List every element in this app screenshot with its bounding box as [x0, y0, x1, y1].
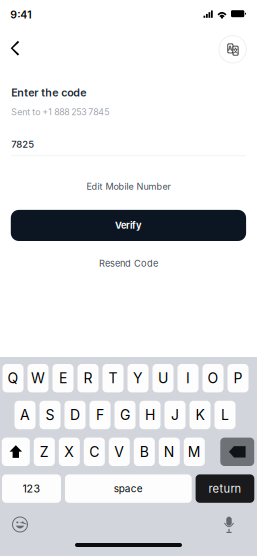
- staticText: J: [171, 406, 179, 423]
- staticText: V: [114, 443, 124, 460]
- button[interactable]: G: [114, 401, 135, 429]
- button[interactable]: D: [64, 401, 85, 429]
- button[interactable]: J: [164, 401, 185, 429]
- staticText: Q: [7, 370, 18, 387]
- staticText: Enter the code: [11, 86, 86, 99]
- button[interactable]: P: [227, 364, 248, 392]
- staticText: T: [108, 370, 117, 387]
- staticText: G: [120, 406, 130, 423]
- button[interactable]: U: [152, 364, 173, 392]
- button[interactable]: space: [65, 474, 192, 503]
- staticText: Y: [133, 370, 143, 387]
- staticText: A: [228, 45, 233, 52]
- button[interactable]: V: [109, 438, 130, 466]
- button[interactable]: R: [77, 364, 98, 392]
- button[interactable]: A: [14, 401, 35, 429]
- staticText: I: [186, 370, 190, 387]
- staticText: Edit Mobile Number: [86, 181, 170, 192]
- staticText: P: [233, 370, 242, 387]
- button[interactable]: X: [59, 438, 80, 466]
- button[interactable]: Emoji keyboard: [11, 516, 28, 533]
- staticText: space: [114, 483, 143, 495]
- button[interactable]: Q: [2, 364, 23, 392]
- staticText: W: [31, 370, 45, 387]
- staticText: Resend Code: [99, 258, 158, 269]
- button[interactable]: M: [184, 438, 205, 466]
- button[interactable]: B: [134, 438, 155, 466]
- staticText: H: [145, 406, 155, 423]
- staticText: Z: [40, 443, 49, 460]
- staticText: C: [89, 443, 99, 460]
- staticText: 7825: [11, 139, 34, 150]
- staticText: N: [164, 443, 175, 460]
- staticText: E: [59, 370, 67, 387]
- staticText: Sent to +1 888 253 7845: [11, 107, 109, 117]
- staticText: 9:41: [10, 8, 31, 21]
- staticText: 123: [22, 482, 40, 495]
- staticText: O: [207, 370, 218, 387]
- button[interactable]: Back: [2, 32, 34, 64]
- button[interactable]: O: [202, 364, 223, 392]
- button[interactable]: 123: [2, 474, 61, 503]
- button[interactable]: return: [196, 474, 254, 503]
- staticText: K: [195, 406, 204, 423]
- button[interactable]: Z: [34, 438, 55, 466]
- button[interactable]: S: [39, 401, 60, 429]
- staticText: A: [20, 406, 30, 423]
- button[interactable]: H: [139, 401, 160, 429]
- staticText: X: [64, 443, 74, 460]
- staticText: M: [188, 443, 201, 460]
- button[interactable]: K: [189, 401, 210, 429]
- button[interactable]: Verify: [11, 210, 246, 241]
- staticText: U: [158, 370, 168, 387]
- button[interactable]: I: [177, 364, 198, 392]
- button[interactable]: Shift: [2, 438, 30, 466]
- staticText: L: [221, 406, 229, 423]
- staticText: S: [45, 406, 54, 423]
- button[interactable]: Translate: [219, 35, 246, 63]
- button[interactable]: W: [27, 364, 48, 392]
- staticText: F: [96, 406, 104, 423]
- button[interactable]: C: [84, 438, 105, 466]
- staticText: Verify: [115, 220, 142, 231]
- button[interactable]: Resend Code: [84, 258, 173, 268]
- button[interactable]: L: [214, 401, 235, 429]
- button[interactable]: T: [102, 364, 123, 392]
- button[interactable]: F: [89, 401, 110, 429]
- button[interactable]: Dictation: [222, 514, 236, 533]
- button[interactable]: Y: [127, 364, 148, 392]
- button[interactable]: E: [52, 364, 73, 392]
- button[interactable]: Edit Mobile Number: [64, 181, 193, 191]
- staticText: R: [83, 370, 92, 387]
- button[interactable]: Delete: [220, 438, 254, 466]
- staticText: B: [140, 443, 149, 460]
- button[interactable]: N: [159, 438, 180, 466]
- staticText: return: [208, 482, 241, 495]
- staticText: D: [70, 406, 80, 423]
- staticText: 文: [233, 47, 239, 54]
